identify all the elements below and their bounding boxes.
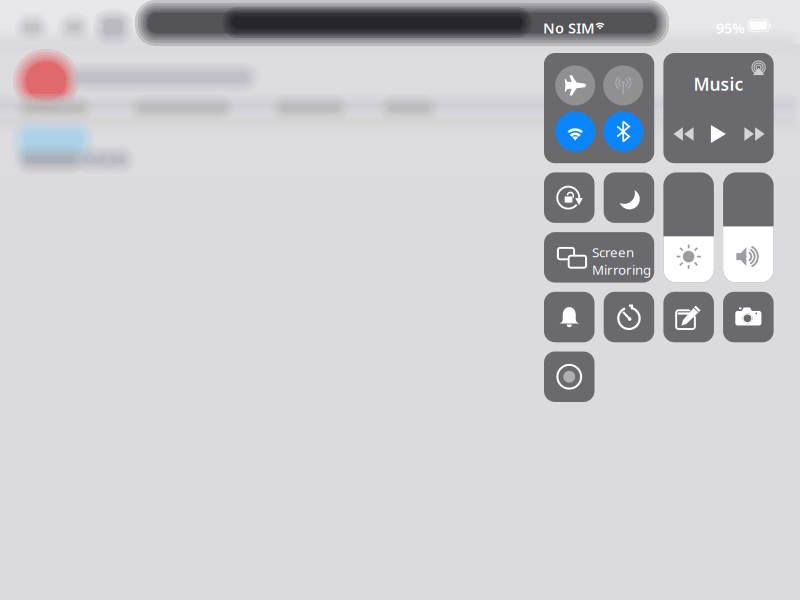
button[interactable]: Camera xyxy=(723,292,774,342)
button[interactable]: Previous Track xyxy=(669,121,699,147)
button[interactable]: AirPlay xyxy=(748,57,770,79)
button[interactable]: Airplane Mode xyxy=(551,61,599,109)
button[interactable]: Play xyxy=(705,121,731,147)
button[interactable]: Timer xyxy=(604,292,654,342)
button[interactable]: Alarm xyxy=(544,292,594,342)
button[interactable]: Screen Mirroring xyxy=(544,232,654,283)
staticText: 95% xyxy=(716,18,745,37)
staticText: No SIM xyxy=(543,18,595,37)
button[interactable]: Brightness xyxy=(663,172,714,283)
button[interactable]: Cellular Data xyxy=(599,61,647,109)
button[interactable]: Bluetooth xyxy=(599,107,647,155)
button[interactable]: Screen Recording xyxy=(544,351,594,402)
staticText: Screen Mirroring xyxy=(592,243,651,278)
button[interactable]: Volume xyxy=(723,172,774,283)
button[interactable]: Do Not Disturb xyxy=(604,172,654,223)
button[interactable]: Notes xyxy=(663,292,714,342)
button[interactable]: Next Track xyxy=(740,121,770,147)
button[interactable]: Wi-Fi xyxy=(551,107,599,155)
button[interactable]: Rotation Lock xyxy=(544,172,594,223)
staticText: Music xyxy=(693,72,743,95)
